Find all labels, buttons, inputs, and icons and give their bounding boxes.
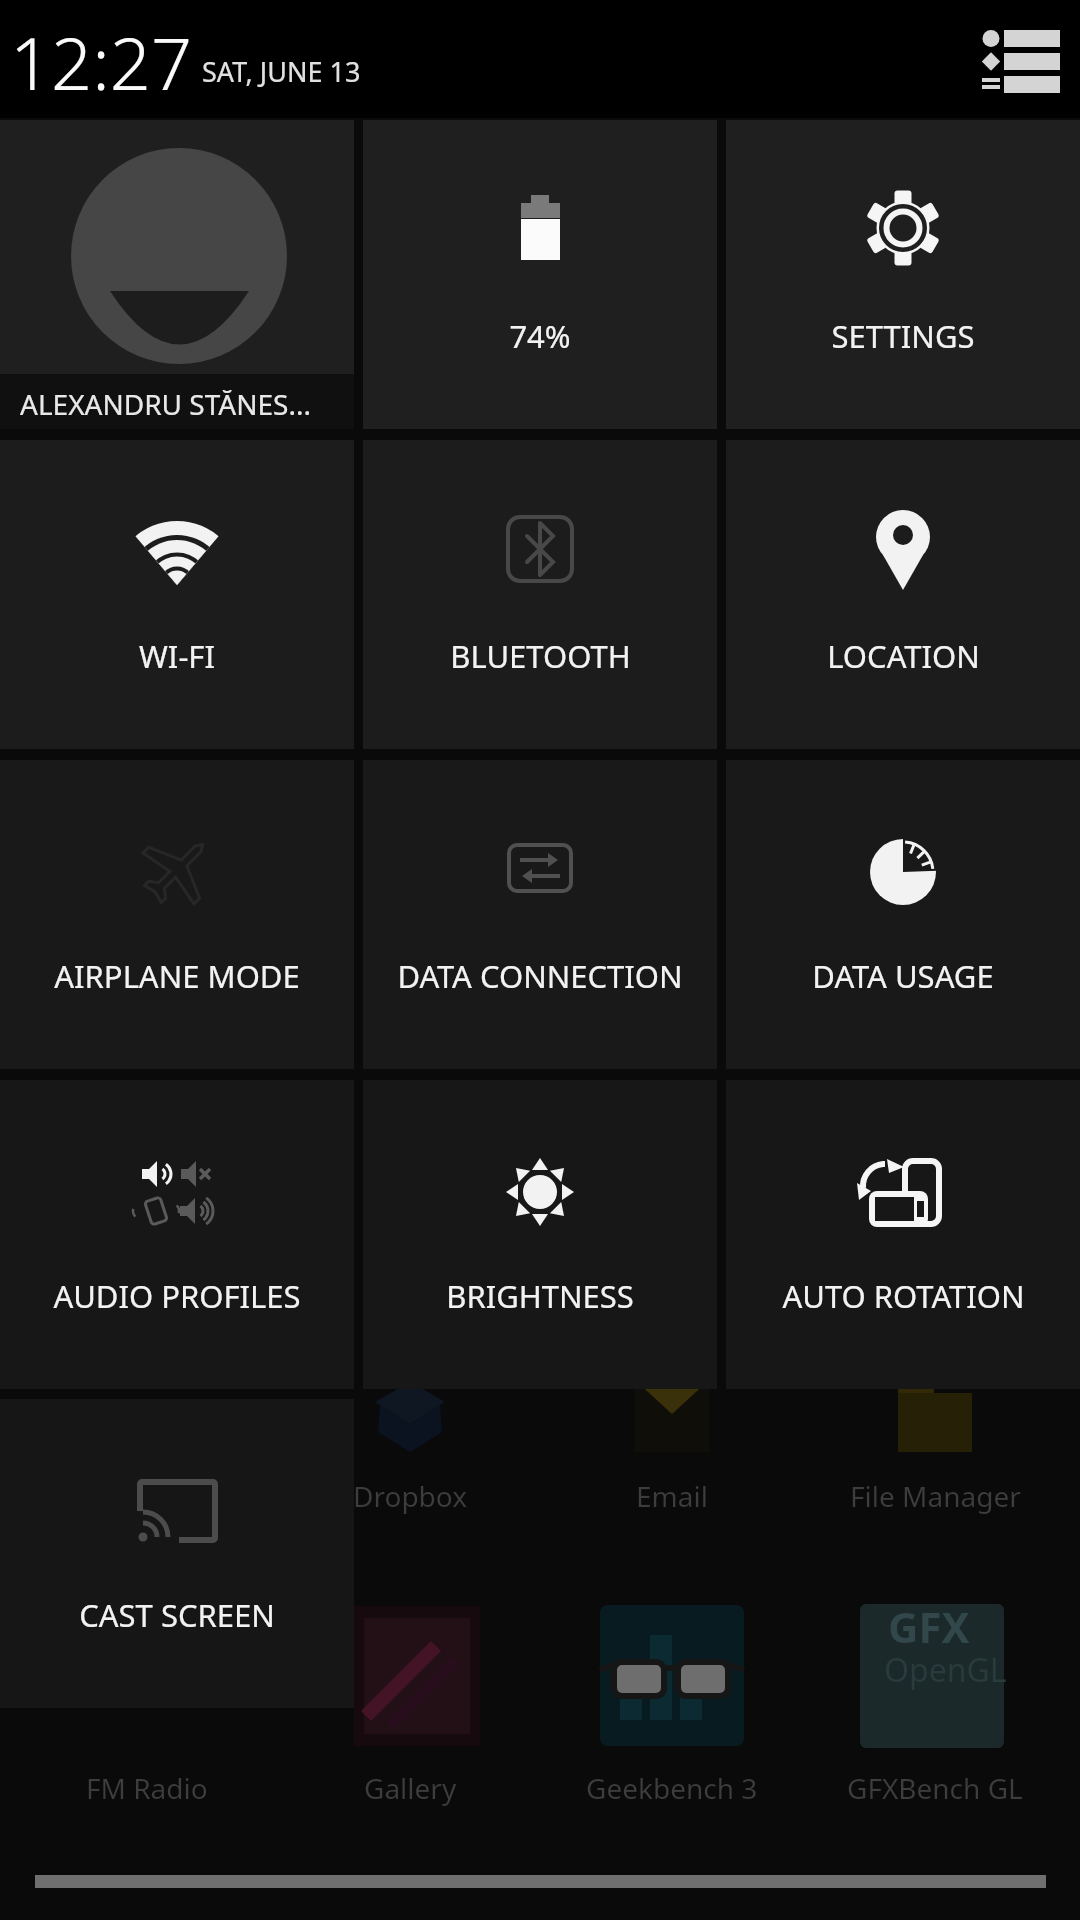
staticText: DATA USAGE — [812, 955, 994, 997]
button[interactable]: SETTINGS — [726, 120, 1080, 429]
button[interactable]: DATA CONNECTION — [363, 760, 717, 1069]
button[interactable]: ALEXANDRU STĂNES... — [0, 120, 354, 429]
button[interactable]: BRIGHTNESS — [363, 1080, 717, 1389]
staticText: Gallery — [364, 1769, 457, 1807]
staticText: AUDIO PROFILES — [53, 1275, 301, 1317]
staticText: BLUETOOTH — [450, 635, 631, 677]
button[interactable]: AUTO ROTATION — [726, 1080, 1080, 1389]
staticText: GFX — [888, 1598, 970, 1655]
staticText: AUTO ROTATION — [782, 1275, 1025, 1317]
button[interactable]: CAST SCREEN — [0, 1399, 354, 1708]
staticText: ALEXANDRU STĂNES... — [20, 385, 311, 423]
staticText: 74% — [509, 315, 571, 357]
staticText: 12:27 — [10, 13, 193, 111]
staticText: SAT, JUNE 13 — [202, 53, 361, 90]
staticText: Dropbox — [353, 1477, 468, 1515]
button[interactable] — [980, 24, 1064, 96]
button[interactable]: DATA USAGE — [726, 760, 1080, 1069]
staticText: WI-FI — [139, 635, 215, 677]
button[interactable]: AUDIO PROFILES — [0, 1080, 354, 1389]
staticText: OpenGL — [884, 1648, 1007, 1692]
button[interactable]: AIRPLANE MODE — [0, 760, 354, 1069]
button[interactable]: 74% — [363, 120, 717, 429]
button[interactable]: WI-FI — [0, 440, 354, 749]
staticText: Email — [636, 1477, 708, 1515]
button[interactable]: LOCATION — [726, 440, 1080, 749]
staticText: AIRPLANE MODE — [54, 955, 300, 997]
staticText: Geekbench 3 — [586, 1769, 758, 1807]
staticText: FM Radio — [86, 1769, 208, 1807]
button[interactable]: BLUETOOTH — [363, 440, 717, 749]
staticText: File Manager — [850, 1477, 1021, 1515]
staticText: SETTINGS — [831, 315, 975, 357]
staticText: LOCATION — [827, 635, 980, 677]
staticText: BRIGHTNESS — [446, 1275, 634, 1317]
staticText: GFXBench GL — [847, 1769, 1023, 1807]
staticText: CAST SCREEN — [79, 1594, 275, 1636]
staticText: DATA CONNECTION — [397, 955, 683, 997]
